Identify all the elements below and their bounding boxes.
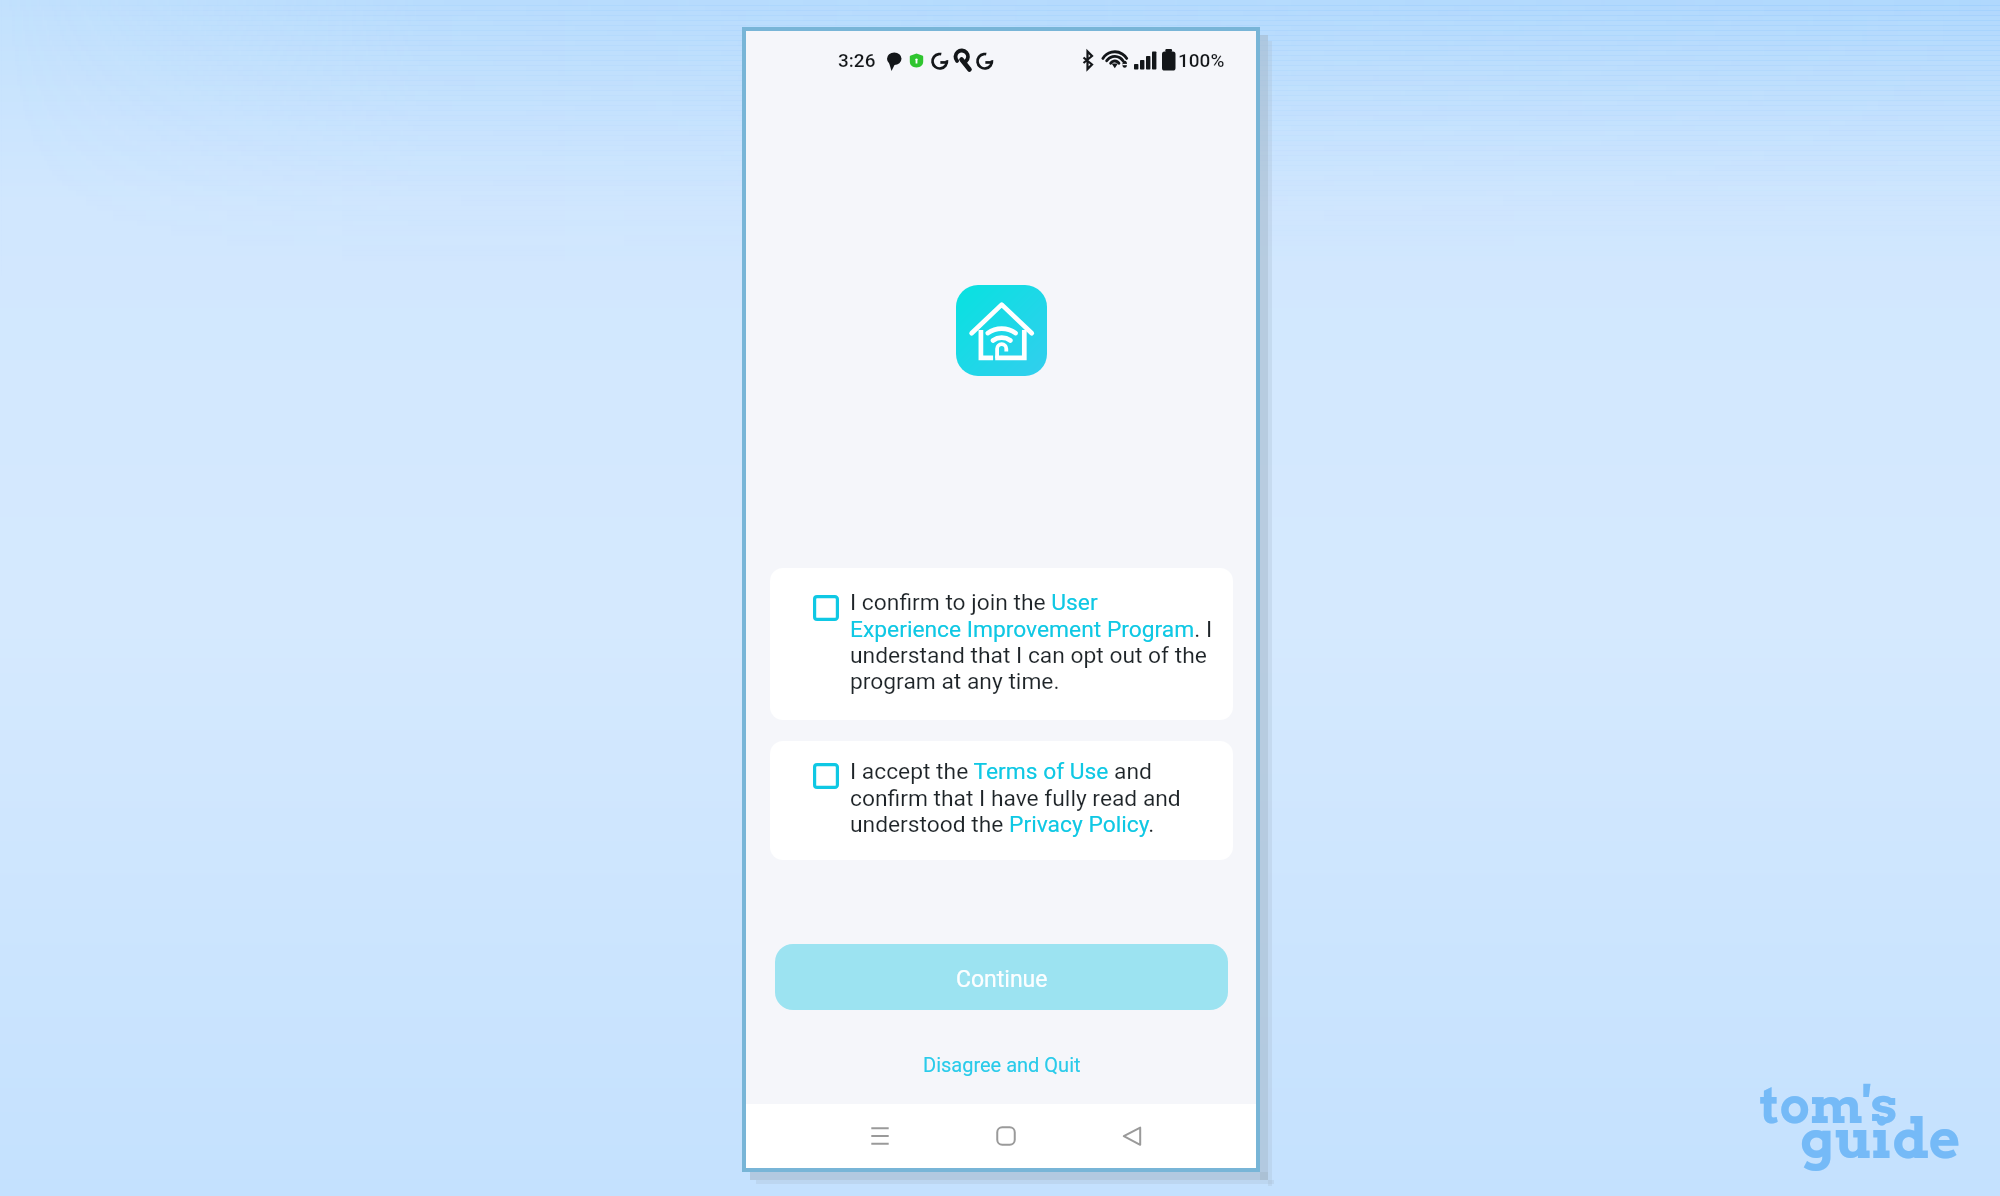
staticText: guide	[1800, 1106, 1961, 1171]
staticText: 100%	[1178, 49, 1225, 71]
staticText: Continue	[956, 966, 1048, 993]
button[interactable]: I confirm to join the User Experience Im…	[770, 568, 1233, 720]
staticText: tom's	[1760, 1075, 1898, 1135]
button[interactable]: I accept the Terms of Use and confirm th…	[770, 741, 1233, 860]
staticText: 3:26	[838, 49, 876, 71]
staticText: Disagree and Quit	[923, 1053, 1081, 1076]
button[interactable]: Disagree and Quit	[775, 1039, 1228, 1089]
staticText: I confirm to join the User Experience Im…	[850, 589, 1220, 694]
button[interactable]: Back	[1094, 1104, 1170, 1168]
staticText: I accept the Terms of Use and confirm th…	[850, 758, 1220, 837]
button[interactable]: Home	[968, 1104, 1044, 1168]
button[interactable]: Continue	[775, 944, 1228, 1010]
button[interactable]: Recent apps	[842, 1104, 918, 1168]
